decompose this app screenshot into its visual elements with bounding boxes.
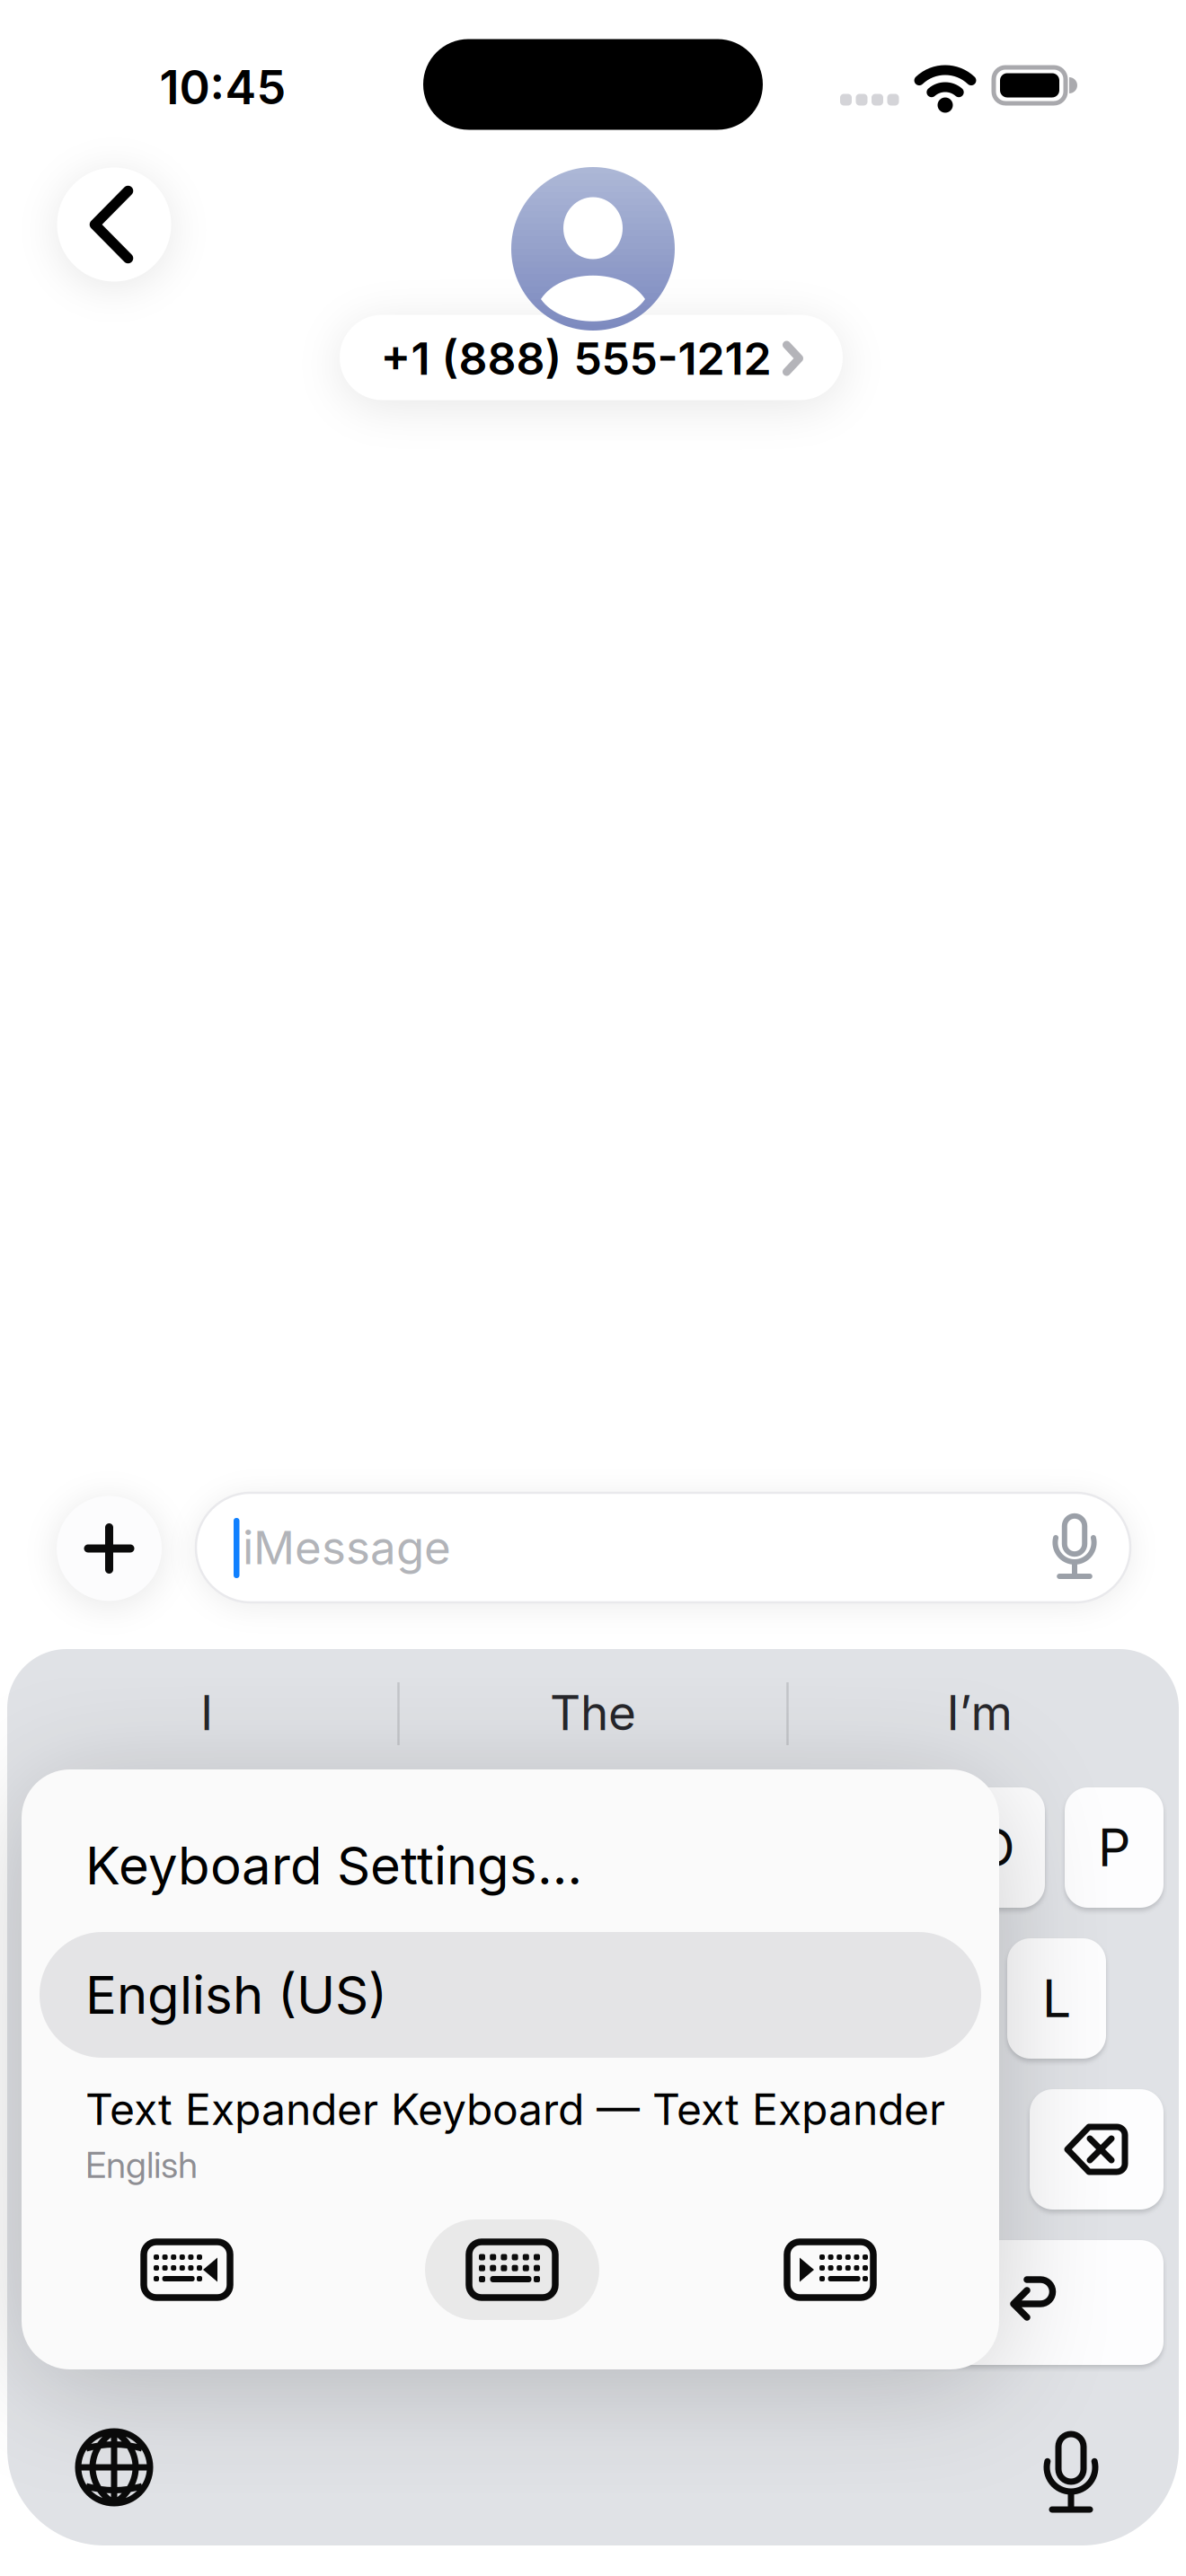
staticText: Keyboard Settings… xyxy=(85,1835,582,1896)
staticText: 10:45 xyxy=(159,60,286,115)
button[interactable]: Back xyxy=(57,168,171,282)
button[interactable]: Move keyboard left xyxy=(115,2216,259,2324)
button[interactable]: +1 (888) 555-1212 xyxy=(340,315,843,400)
button[interactable]: Dictation xyxy=(1008,2404,1134,2530)
button[interactable]: O xyxy=(946,1787,1045,1908)
button[interactable]: Move keyboard right xyxy=(758,2216,902,2324)
staticText: O xyxy=(976,1817,1015,1878)
staticText: I xyxy=(200,1685,213,1741)
button[interactable]: Keyboard Settings… xyxy=(85,1830,582,1901)
staticText: iMessage xyxy=(243,1521,451,1575)
staticText: P xyxy=(1098,1817,1130,1878)
staticText: English xyxy=(85,2144,198,2186)
button[interactable]: Return xyxy=(874,2240,1164,2365)
button[interactable]: The xyxy=(404,1668,782,1758)
staticText: +1 (888) 555-1212 xyxy=(381,332,771,385)
button[interactable]: iMessage xyxy=(196,1493,1130,1602)
staticText: English (US) xyxy=(85,1964,387,2026)
staticText: L xyxy=(1042,1968,1071,2029)
button[interactable]: Add attachment xyxy=(57,1496,162,1601)
button[interactable]: Delete xyxy=(1030,2089,1164,2210)
button[interactable]: I xyxy=(18,1668,395,1758)
staticText: I’m xyxy=(947,1685,1012,1741)
button[interactable]: P xyxy=(1065,1787,1164,1908)
button[interactable]: Dock keyboard xyxy=(425,2216,599,2324)
button[interactable]: L xyxy=(1007,1938,1106,2059)
button[interactable]: English (US) xyxy=(40,1932,981,2058)
button[interactable]: Text Expander Keyboard — Text Expander xyxy=(85,2084,945,2186)
button[interactable]: Next keyboard xyxy=(51,2404,177,2530)
staticText: Text Expander Keyboard — Text Expander xyxy=(85,2084,945,2135)
staticText: The xyxy=(550,1685,636,1741)
button[interactable]: I’m xyxy=(791,1668,1168,1758)
